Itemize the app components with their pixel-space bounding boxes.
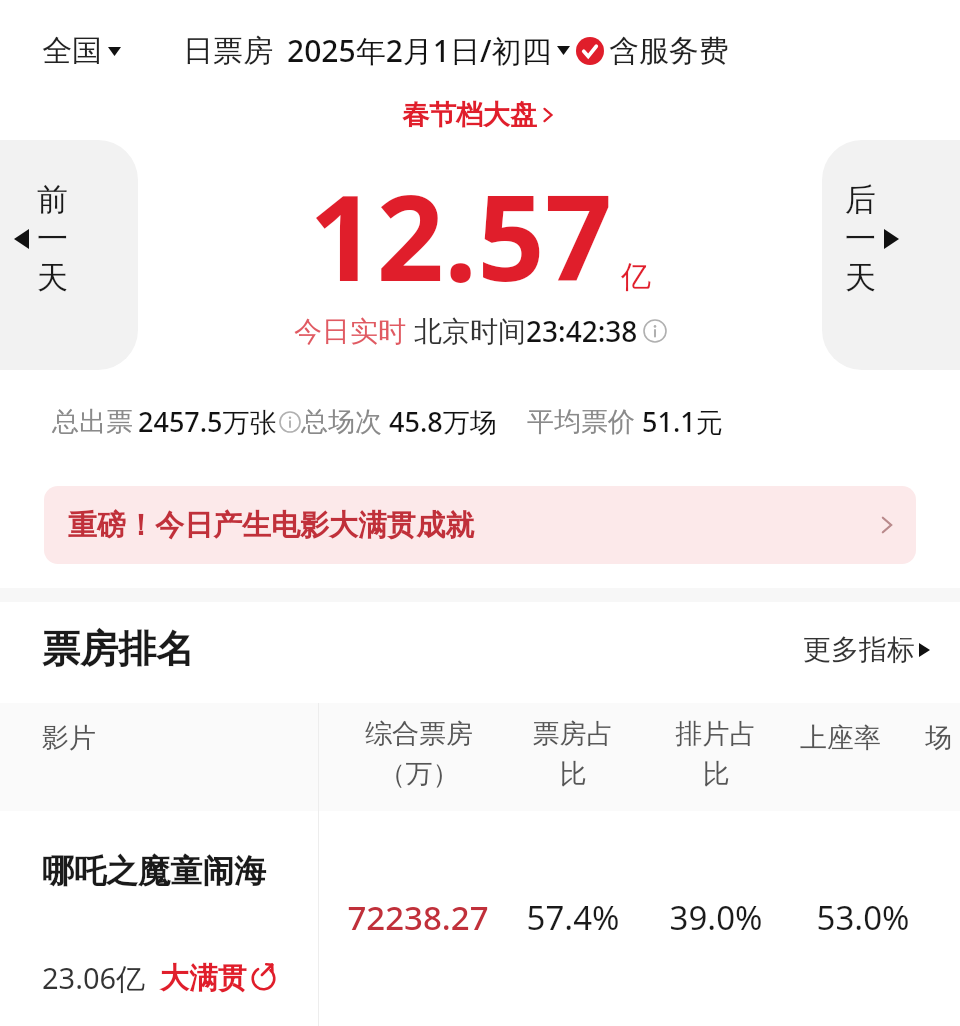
staticText: 后 [845,180,876,219]
staticText: 北京时间 [414,314,526,349]
button[interactable]: 说明 [643,319,667,343]
staticText: 39.0% [648,895,784,940]
staticText: 上座率 [800,721,881,755]
staticText: 亿 [621,258,651,296]
staticText: 含服务费 [609,32,729,70]
staticText: 更多指标 [803,632,915,667]
button[interactable]: 全国 [42,32,121,70]
staticText: 前 [37,180,68,219]
staticText: 全国 [42,32,102,70]
staticText: 排片占 比 [648,717,784,791]
staticText: 一 [37,219,68,258]
staticText: 总出票 [52,405,133,439]
staticText: 票房占 比 [505,717,641,791]
staticText: 平均票价 [527,405,635,439]
staticText: 票房排名 [42,625,194,673]
button[interactable]: 重磅！今日产生电影大满贯成就 [44,486,916,564]
staticText: 场 [925,721,952,755]
button[interactable]: 含服务费 [576,32,729,70]
staticText: 总场次 [301,405,382,439]
staticText: 72238.27 [330,895,506,940]
staticText: 53.0% [790,895,936,940]
button[interactable]: 哪吒之魔童闹海 [0,811,960,1026]
staticText: 今日实时 [294,314,406,349]
staticText: 大满贯 [160,960,247,997]
staticText: 综合票房 （万） [340,717,498,791]
staticText: 12.57 [309,155,613,316]
button[interactable]: 2025年2月1日/初四 [287,30,570,71]
staticText: 天 [37,258,68,297]
staticText: 影片 [42,721,96,755]
staticText: 哪吒之魔童闹海 [42,851,292,891]
staticText: 日票房 [183,32,273,70]
staticText: 一 [845,219,876,258]
staticText: 重磅！今日产生电影大满贯成就 [68,507,474,544]
staticText: 天 [845,258,876,297]
button[interactable]: 春节档大盘 [402,98,559,132]
button[interactable]: 前一天 [0,140,138,370]
staticText: 2457.5万张 [138,403,277,440]
button[interactable]: 后一天 [822,140,960,370]
staticText: 23.06亿 [42,958,146,998]
staticText: 春节档大盘 [402,98,537,132]
staticText: 57.4% [505,895,641,940]
button[interactable]: 更多指标 [803,632,930,667]
staticText: 45.8万场 [389,403,497,440]
staticText: 51.1元 [642,403,723,440]
staticText: 2025年2月1日/初四 [287,30,552,71]
staticText: 23:42:38 [526,312,638,350]
